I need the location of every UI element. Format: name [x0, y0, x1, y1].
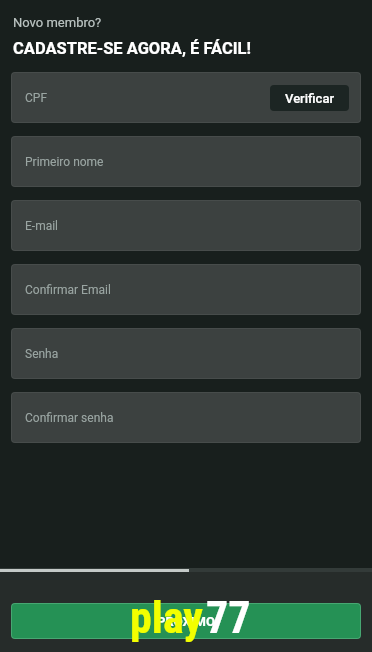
- staticText: PRÓXIMO: [157, 614, 215, 629]
- button[interactable]: Confirmar Email: [12, 265, 360, 314]
- button[interactable]: Senha: [12, 329, 360, 378]
- button[interactable]: Confirmar senha: [12, 393, 360, 442]
- button[interactable]: PRÓXIMO: [12, 604, 360, 638]
- button[interactable]: E-mail: [12, 201, 360, 250]
- staticText: Primeiro nome: [25, 155, 104, 169]
- staticText: CPF: [25, 91, 48, 105]
- staticText: Confirmar senha: [25, 411, 114, 425]
- staticText: Novo membro?: [13, 15, 102, 30]
- staticText: 77: [206, 592, 251, 644]
- button[interactable]: Verificar: [270, 85, 349, 111]
- staticText: CADASTRE-SE AGORA, É FÁCIL!: [13, 39, 251, 58]
- staticText: Confirmar Email: [25, 283, 111, 297]
- button[interactable]: CPF: [12, 73, 360, 122]
- staticText: E-mail: [25, 219, 59, 233]
- staticText: Senha: [25, 347, 59, 361]
- staticText: play: [130, 592, 203, 644]
- button[interactable]: Primeiro nome: [12, 137, 360, 186]
- staticText: Verificar: [285, 91, 334, 106]
